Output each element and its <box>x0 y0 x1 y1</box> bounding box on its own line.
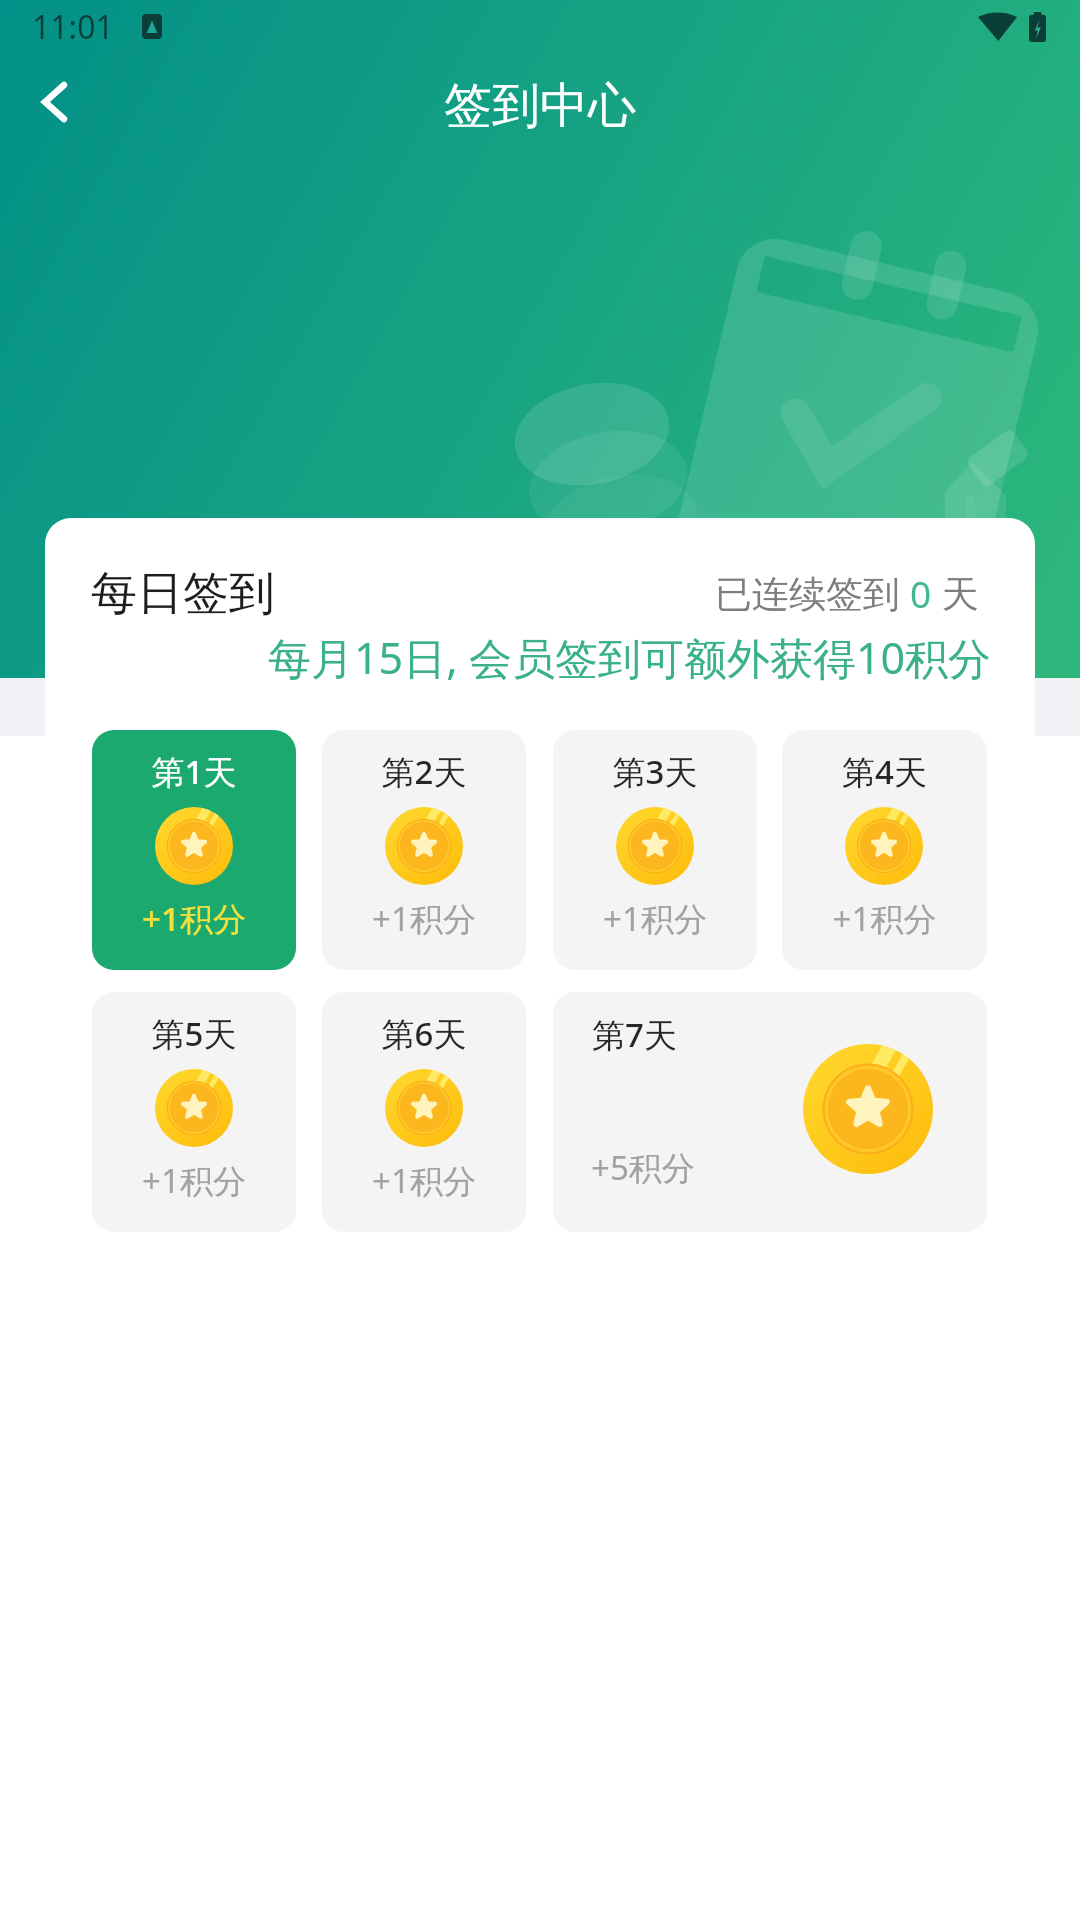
staticText: 第6天 <box>322 1011 526 1056</box>
staticText: 签到中心 <box>0 76 1080 136</box>
staticText: +1积分 <box>322 1158 526 1203</box>
button[interactable]: 第5天 <box>92 992 296 1232</box>
button[interactable]: 第2天 <box>322 730 526 970</box>
button[interactable]: 第1天 <box>92 730 296 970</box>
button[interactable]: Back <box>18 58 106 146</box>
staticText: 第3天 <box>553 749 757 794</box>
staticText: 每日签到 <box>91 565 275 623</box>
staticText: +5积分 <box>591 1145 695 1190</box>
staticText: 每月15日, 会员签到可额外获得10积分 <box>268 628 992 687</box>
staticText: +1积分 <box>92 1158 296 1203</box>
staticText: +1积分 <box>782 896 987 941</box>
staticText: 第2天 <box>322 749 526 794</box>
staticText: 第5天 <box>92 1011 296 1056</box>
staticText: 第4天 <box>782 749 987 794</box>
staticText: +1积分 <box>92 896 296 941</box>
staticText: 11:01 <box>32 5 114 49</box>
staticText: +1积分 <box>322 896 526 941</box>
staticText: 天 <box>932 567 979 618</box>
staticText: 已连续签到 <box>715 567 910 618</box>
button[interactable]: 第3天 <box>553 730 757 970</box>
staticText: 第1天 <box>92 749 296 794</box>
button[interactable]: 第4天 <box>782 730 987 970</box>
staticText: 第7天 <box>592 1012 677 1057</box>
button[interactable]: 第6天 <box>322 992 526 1232</box>
button[interactable]: 第7天 <box>553 992 987 1232</box>
staticText: +1积分 <box>553 896 757 941</box>
staticText: 0 <box>910 568 932 618</box>
